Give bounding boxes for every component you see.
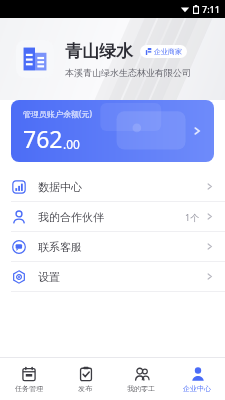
staticText: 1个 (185, 211, 200, 223)
button[interactable]: 任务管理 (0, 358, 57, 400)
button[interactable]: 联系客服 (0, 232, 225, 261)
staticText: 管理员账户余额(元) (23, 108, 92, 119)
staticText: 我的合作伙伴 (38, 210, 104, 224)
staticText: 企业商家 (154, 47, 182, 56)
button[interactable]: 管理员账户余额(元) (11, 100, 214, 162)
staticText: .00 (63, 136, 80, 152)
staticText: 我的零工 (127, 384, 155, 393)
button[interactable]: 企业中心 (169, 358, 225, 400)
staticText: 联系客服 (38, 240, 82, 254)
staticText: 企业中心 (183, 384, 211, 393)
button[interactable]: 我的合作伙伴 (0, 202, 225, 231)
staticText: 762 (23, 123, 63, 154)
staticText: 数据中心 (38, 180, 82, 194)
staticText: 任务管理 (15, 384, 43, 393)
button[interactable]: 发布 (57, 358, 113, 400)
staticText: 发布 (78, 384, 92, 393)
button[interactable]: 我的零工 (113, 358, 169, 400)
button[interactable]: 设置 (0, 262, 225, 291)
staticText: 设置 (38, 270, 60, 284)
staticText: 本溪青山绿水生态林业有限公司 (65, 67, 191, 78)
button[interactable]: 数据中心 (0, 172, 225, 201)
staticText: 7:11 (202, 3, 220, 15)
staticText: 青山绿水 (65, 41, 133, 62)
